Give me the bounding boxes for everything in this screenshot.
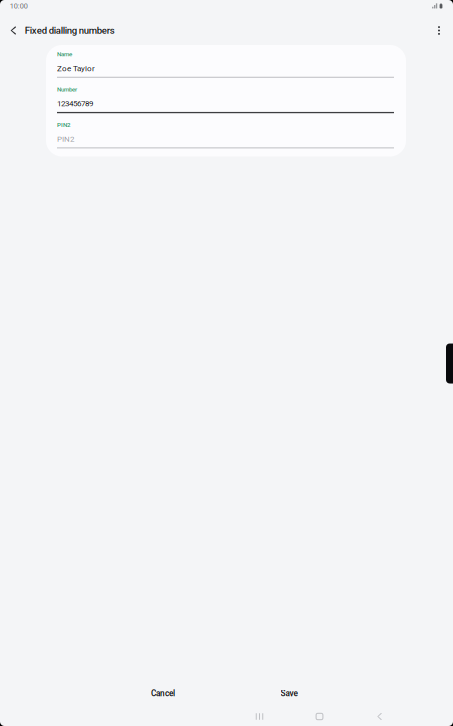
staticText: Fixed dialling numbers xyxy=(25,25,115,36)
button[interactable]: Cancel xyxy=(100,680,226,706)
staticText: PIN2 xyxy=(57,121,70,128)
staticText: Cancel xyxy=(151,689,175,698)
staticText: 123456789 xyxy=(57,99,93,108)
staticText: Zoe Taylor xyxy=(57,64,95,73)
staticText: Save xyxy=(280,689,297,698)
button[interactable]: Back xyxy=(349,709,409,723)
button[interactable]: Save xyxy=(226,680,352,706)
button[interactable]: Recents xyxy=(229,709,289,723)
staticText: Name xyxy=(57,51,72,58)
button[interactable]: Home xyxy=(289,709,349,723)
staticText: Number xyxy=(57,86,77,93)
staticText: 10:00 xyxy=(10,2,28,10)
button[interactable]: More options xyxy=(427,17,453,43)
button[interactable]: Back xyxy=(0,17,25,43)
staticText: PIN2 xyxy=(57,134,74,144)
